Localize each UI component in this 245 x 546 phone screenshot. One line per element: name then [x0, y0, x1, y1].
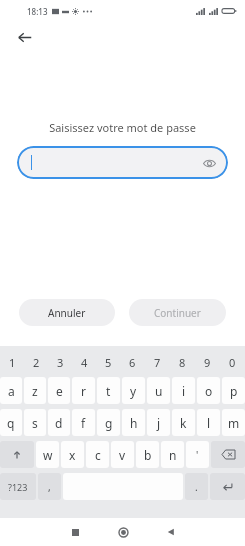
button[interactable]: .: [185, 473, 208, 500]
button[interactable]: v: [111, 441, 134, 468]
button[interactable]: p: [222, 377, 245, 404]
staticText: 0: [229, 355, 236, 370]
button[interactable]: g: [97, 409, 120, 436]
staticText: 18:13: [27, 6, 48, 17]
staticText: 4: [81, 355, 88, 370]
button[interactable]: u: [147, 377, 170, 404]
staticText: d: [55, 415, 63, 431]
staticText: Continuer: [154, 306, 201, 320]
staticText: h: [130, 415, 138, 431]
button[interactable]: r: [72, 377, 95, 404]
button[interactable]: Retour: [156, 518, 186, 546]
staticText: s: [32, 415, 38, 431]
button[interactable]: 9: [195, 350, 220, 374]
staticText: 7: [154, 355, 161, 370]
staticText: v: [119, 447, 126, 463]
button[interactable]: e: [48, 377, 70, 404]
button[interactable]: Retour: [10, 23, 38, 51]
button[interactable]: j: [147, 409, 170, 436]
staticText: w: [43, 447, 53, 463]
staticText: ,: [48, 480, 51, 494]
staticText: z: [32, 383, 38, 399]
button[interactable]: Continuer: [129, 299, 226, 326]
staticText: b: [144, 447, 152, 463]
button[interactable]: t: [97, 377, 120, 404]
staticText: x: [69, 447, 76, 463]
staticText: r: [81, 383, 86, 399]
button[interactable]: Applications récentes: [60, 518, 90, 546]
button[interactable]: ': [186, 441, 209, 468]
button[interactable]: ,: [38, 473, 61, 500]
button[interactable]: c: [86, 441, 109, 468]
button[interactable]: 2: [24, 350, 48, 374]
staticText: k: [180, 415, 187, 431]
button[interactable]: s: [24, 409, 46, 436]
button[interactable]: m: [222, 409, 245, 436]
button[interactable]: 3: [48, 350, 72, 374]
button[interactable]: Afficher le mot de passe: [17, 146, 228, 179]
button[interactable]: d: [48, 409, 70, 436]
staticText: 1: [9, 355, 16, 370]
staticText: i: [182, 383, 186, 399]
button[interactable]: 5: [96, 350, 120, 374]
button[interactable]: ?123: [0, 473, 36, 500]
staticText: p: [230, 383, 238, 399]
staticText: f: [81, 415, 86, 431]
staticText: e: [56, 383, 63, 399]
button[interactable]: z: [24, 377, 46, 404]
button[interactable]: f: [72, 409, 95, 436]
button[interactable]: Majuscule: [0, 441, 34, 468]
staticText: a: [8, 383, 15, 399]
staticText: u: [155, 383, 163, 399]
staticText: ': [196, 448, 199, 462]
button[interactable]: 7: [145, 350, 170, 374]
button[interactable]: x: [61, 441, 84, 468]
button[interactable]: a: [0, 377, 22, 404]
staticText: 6: [129, 355, 136, 370]
button[interactable]: k: [172, 409, 195, 436]
button[interactable]: Annuler: [19, 299, 115, 326]
button[interactable]: 4: [72, 350, 96, 374]
button[interactable]: h: [122, 409, 145, 436]
staticText: 5: [105, 355, 112, 370]
staticText: q: [7, 415, 15, 431]
button[interactable]: l: [197, 409, 220, 436]
button[interactable]: y: [122, 377, 145, 404]
staticText: Annuler: [48, 306, 86, 320]
button[interactable]: Accueil: [108, 518, 138, 546]
staticText: o: [205, 383, 213, 399]
button[interactable]: w: [36, 441, 59, 468]
staticText: j: [157, 415, 161, 431]
staticText: t: [106, 383, 111, 399]
button[interactable]: 1: [0, 350, 24, 374]
staticText: ?123: [8, 481, 28, 493]
staticText: Saisissez votre mot de passe: [0, 120, 245, 135]
button[interactable]: q: [0, 409, 22, 436]
button[interactable]: 0: [220, 350, 245, 374]
staticText: .: [195, 480, 198, 494]
staticText: c: [95, 447, 101, 463]
staticText: m: [228, 415, 240, 431]
staticText: 9: [204, 355, 211, 370]
button[interactable]: n: [161, 441, 184, 468]
button[interactable]: i: [172, 377, 195, 404]
staticText: 2: [33, 355, 40, 370]
button[interactable]: 6: [120, 350, 145, 374]
button[interactable]: Entrée: [210, 473, 245, 500]
staticText: y: [130, 383, 137, 399]
button[interactable]: Supprimer: [211, 441, 245, 468]
button[interactable]: b: [136, 441, 159, 468]
staticText: n: [169, 447, 177, 463]
button[interactable]: 8: [170, 350, 195, 374]
button[interactable]: o: [197, 377, 220, 404]
staticText: 3: [57, 355, 64, 370]
staticText: 8: [179, 355, 186, 370]
button[interactable]: Afficher le mot de passe: [199, 153, 219, 173]
staticText: g: [105, 415, 113, 431]
staticText: l: [207, 415, 211, 431]
